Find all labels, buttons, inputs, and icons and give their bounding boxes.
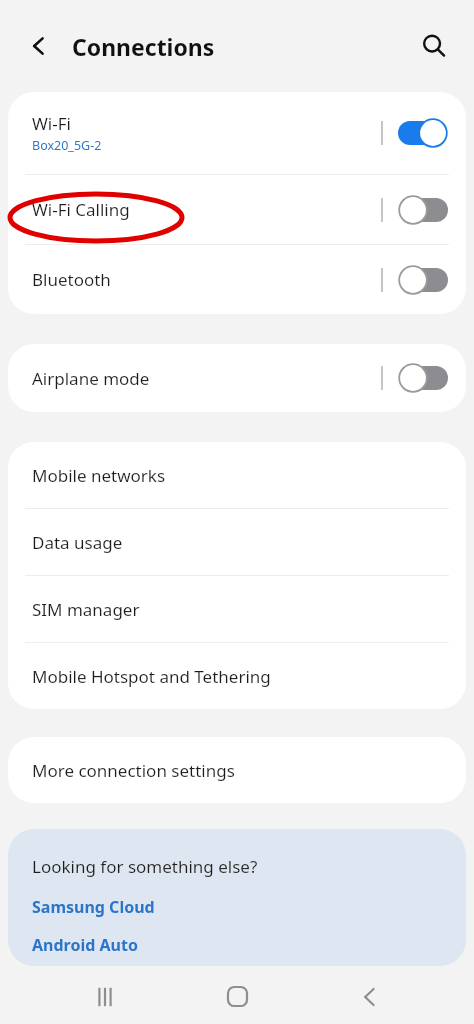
- button[interactable]: Toggle off: [398, 195, 448, 225]
- staticText: Airplane mode: [32, 367, 150, 390]
- staticText: Looking for something else?: [32, 855, 258, 878]
- staticText: More connection settings: [32, 759, 235, 782]
- button[interactable]: Data usage: [8, 509, 466, 575]
- button[interactable]: Back: [342, 969, 398, 1024]
- button[interactable]: Wi-Fi: [8, 92, 466, 174]
- button[interactable]: Home: [209, 969, 265, 1024]
- staticText: SIM manager: [32, 598, 140, 621]
- staticText: Samsung Cloud: [32, 896, 155, 918]
- button[interactable]: Toggle off: [398, 265, 448, 295]
- staticText: Android Auto: [32, 934, 138, 956]
- button[interactable]: Looking for something else?: [8, 829, 466, 966]
- button[interactable]: Toggle on: [398, 118, 448, 148]
- staticText: Connections: [72, 31, 215, 62]
- staticText: Box20_5G-2: [32, 137, 102, 154]
- button[interactable]: Bluetooth: [8, 245, 466, 314]
- staticText: Data usage: [32, 531, 123, 554]
- button[interactable]: Toggle off: [398, 363, 448, 393]
- button[interactable]: Mobile Hotspot and Tethering: [8, 643, 466, 709]
- button[interactable]: More connection settings: [8, 737, 466, 803]
- staticText: Wi-Fi: [32, 112, 71, 135]
- staticText: Mobile Hotspot and Tethering: [32, 665, 271, 688]
- button[interactable]: Airplane mode: [8, 344, 466, 412]
- button[interactable]: Recents: [77, 969, 133, 1024]
- button[interactable]: SIM manager: [8, 576, 466, 642]
- button[interactable]: Back: [22, 29, 56, 63]
- button[interactable]: Wi-Fi Calling: [8, 175, 466, 244]
- staticText: Bluetooth: [32, 268, 111, 291]
- staticText: Mobile networks: [32, 464, 166, 487]
- button[interactable]: Search: [414, 26, 454, 66]
- button[interactable]: Mobile networks: [8, 442, 466, 508]
- staticText: Wi-Fi Calling: [32, 198, 130, 221]
